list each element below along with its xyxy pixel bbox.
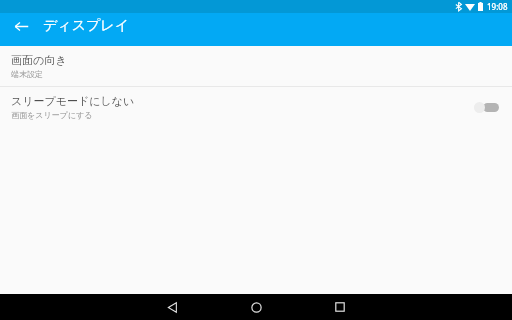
button[interactable]: Recent apps — [324, 294, 356, 320]
staticText: 画面の向き — [11, 53, 67, 67]
button[interactable]: Back — [156, 294, 188, 320]
staticText: 画面をスリープにする — [11, 110, 93, 120]
button[interactable]: Home — [240, 294, 272, 320]
staticText: 端末設定 — [11, 69, 43, 79]
button[interactable]: Back — [8, 13, 34, 39]
button[interactable]: 画面の向き — [0, 46, 512, 86]
button[interactable]: スリープモードにしない — [0, 87, 512, 127]
button[interactable]: Toggle sleep mode — [474, 97, 500, 117]
staticText: スリープモードにしない — [11, 94, 135, 108]
staticText: ディスプレイ — [43, 17, 129, 35]
staticText: 19:08 — [487, 1, 508, 12]
